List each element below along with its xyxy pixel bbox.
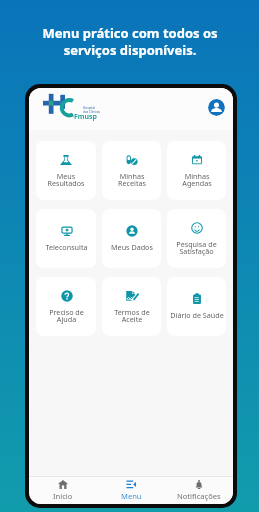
staticText: das Clínicas (83, 110, 100, 114)
button[interactable]: Meus Resultados (36, 141, 96, 200)
button[interactable]: Hospital (43, 92, 99, 120)
staticText: Teleconsulta (45, 242, 88, 252)
staticText: Minhas Agendas (182, 171, 212, 188)
button[interactable]: Pesquisa de Satisfação (167, 209, 226, 268)
button[interactable]: Minhas Agendas (167, 141, 226, 200)
button[interactable]: Preciso de Ajuda (36, 277, 96, 336)
staticText: Meus Dados (111, 242, 153, 252)
staticText: Diário de Saúde (170, 310, 224, 320)
button[interactable]: Minhas Receitas (102, 141, 161, 200)
button[interactable]: Notificações (165, 477, 233, 504)
staticText: Termos de Aceite (114, 307, 150, 324)
staticText: Minhas Receitas (118, 171, 146, 188)
button[interactable]: Perfil (208, 99, 225, 116)
staticText: Fmusp (74, 112, 97, 122)
button[interactable]: Início (29, 477, 97, 504)
staticText: Pesquisa de Satisfação (176, 239, 217, 256)
button[interactable]: Menu (97, 477, 165, 504)
staticText: Menu (121, 491, 142, 501)
button[interactable]: Diário de Saúde (167, 277, 226, 336)
staticText: Preciso de Ajuda (49, 307, 84, 324)
staticText: Hospital (83, 106, 95, 110)
button[interactable]: Termos de Aceite (102, 277, 161, 336)
staticText: Menu prático com todos os serviços dispo… (42, 24, 218, 59)
staticText: Meus Resultados (47, 171, 85, 188)
button[interactable]: Teleconsulta (36, 209, 96, 268)
button[interactable]: Meus Dados (102, 209, 161, 268)
staticText: Início (53, 491, 73, 501)
staticText: Notificações (177, 491, 221, 501)
